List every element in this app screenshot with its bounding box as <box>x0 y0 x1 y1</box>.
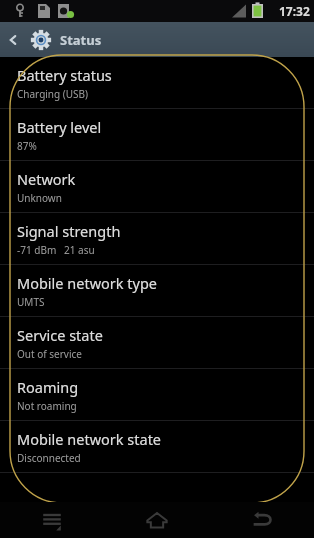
button[interactable]: Menu <box>0 502 104 538</box>
staticText: Battery status <box>17 65 112 85</box>
button[interactable]: Signal strength <box>0 213 314 265</box>
staticText: 17:32 <box>279 3 310 19</box>
staticText: Service state <box>17 325 103 345</box>
staticText: 87% <box>17 139 37 153</box>
staticText: Disconnected <box>17 451 81 465</box>
staticText: -71 dBm 21 asu <box>17 243 95 257</box>
staticText: UMTS <box>17 295 45 309</box>
staticText: Roaming <box>17 377 79 397</box>
staticText: Out of service <box>17 347 82 361</box>
button[interactable]: Roaming <box>0 369 314 421</box>
staticText: Signal strength <box>17 221 121 241</box>
staticText: Mobile network type <box>17 273 158 293</box>
staticText: Unknown <box>17 191 62 205</box>
button[interactable]: Back <box>0 22 26 57</box>
staticText: Status <box>60 31 102 49</box>
staticText: Not roaming <box>17 399 77 413</box>
button[interactable]: Network <box>0 161 314 213</box>
button[interactable]: Service state <box>0 317 314 369</box>
button[interactable]: Home <box>104 502 209 538</box>
staticText: Battery level <box>17 117 102 137</box>
button[interactable]: Battery level <box>0 109 314 161</box>
staticText: Network <box>17 169 76 189</box>
button[interactable]: Settings <box>26 25 56 55</box>
button[interactable]: Back <box>209 502 314 538</box>
button[interactable]: Mobile network state <box>0 421 314 473</box>
button[interactable]: Battery status <box>0 57 314 109</box>
staticText: Mobile network state <box>17 429 162 449</box>
button[interactable]: Mobile network type <box>0 265 314 317</box>
staticText: Charging (USB) <box>17 87 89 101</box>
